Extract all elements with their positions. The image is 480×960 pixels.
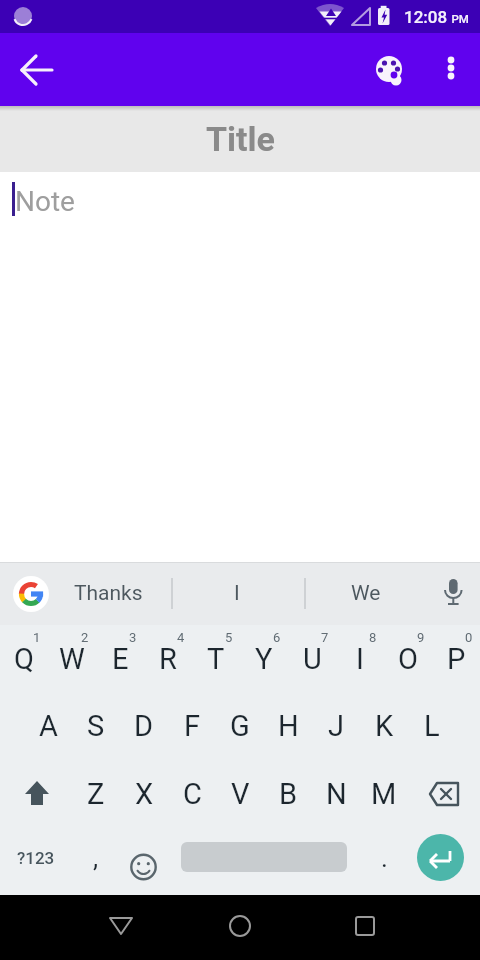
staticText: E xyxy=(112,642,129,676)
staticText: Q xyxy=(14,642,34,676)
button[interactable]: X xyxy=(120,760,168,827)
button[interactable]: . xyxy=(360,827,408,895)
staticText: . xyxy=(381,843,388,873)
button[interactable]: U xyxy=(288,625,336,692)
staticText: X xyxy=(135,777,154,811)
button[interactable]: O xyxy=(384,625,432,692)
staticText: 2 xyxy=(81,630,89,645)
staticText: Thanks xyxy=(74,581,143,606)
staticText: C xyxy=(183,777,202,811)
staticText: Title xyxy=(206,119,275,159)
staticText: I xyxy=(234,581,240,606)
button[interactable] xyxy=(12,575,50,613)
staticText: J xyxy=(328,709,345,743)
button[interactable]: V xyxy=(216,760,264,827)
staticText: ?123 xyxy=(17,848,55,868)
button[interactable] xyxy=(120,827,168,895)
staticText: , xyxy=(93,843,99,873)
staticText: Note xyxy=(15,185,75,218)
button[interactable]: ?123 xyxy=(0,827,72,895)
button[interactable]: R xyxy=(144,625,192,692)
button[interactable]: I xyxy=(177,562,297,625)
staticText: 6 xyxy=(273,630,281,645)
staticText: Z xyxy=(87,777,105,811)
staticText: 4 xyxy=(177,630,185,645)
staticText: U xyxy=(303,642,322,676)
button[interactable]: C xyxy=(168,760,216,827)
staticText: R xyxy=(159,642,177,676)
button[interactable] xyxy=(168,827,360,895)
button[interactable]: G xyxy=(216,692,264,760)
button[interactable] xyxy=(408,760,480,827)
staticText: F xyxy=(184,709,201,743)
button[interactable]: W xyxy=(48,625,96,692)
button[interactable] xyxy=(408,827,480,895)
staticText: 9 xyxy=(417,630,425,645)
staticText: A xyxy=(39,709,58,743)
button[interactable]: L xyxy=(408,692,456,760)
button[interactable]: Y xyxy=(240,625,288,692)
button[interactable]: H xyxy=(264,692,312,760)
button[interactable]: J xyxy=(312,692,360,760)
button[interactable] xyxy=(97,902,145,950)
button[interactable] xyxy=(341,902,389,950)
staticText: 3 xyxy=(129,630,137,645)
staticText: M xyxy=(371,777,397,811)
staticText: 0 xyxy=(465,630,473,645)
button[interactable]: M xyxy=(360,760,408,827)
button[interactable]: Title xyxy=(0,106,480,172)
staticText: W xyxy=(59,642,85,676)
button[interactable] xyxy=(365,46,413,94)
staticText: T xyxy=(207,642,225,676)
button[interactable]: Q xyxy=(0,625,48,692)
button[interactable] xyxy=(13,46,61,94)
button[interactable] xyxy=(216,902,264,950)
staticText: I xyxy=(356,642,364,676)
staticText: 1 xyxy=(33,630,41,645)
staticText: D xyxy=(134,709,154,743)
button[interactable]: E xyxy=(96,625,144,692)
button[interactable]: , xyxy=(72,827,120,895)
staticText: Y xyxy=(255,642,273,676)
button[interactable]: Z xyxy=(72,760,120,827)
button[interactable]: S xyxy=(72,692,120,760)
staticText: N xyxy=(326,777,347,811)
staticText: 5 xyxy=(225,630,233,645)
staticText: S xyxy=(87,709,105,743)
button[interactable]: B xyxy=(264,760,312,827)
staticText: B xyxy=(279,777,298,811)
button[interactable]: P xyxy=(432,625,480,692)
staticText: O xyxy=(398,642,418,676)
staticText: P xyxy=(447,642,466,676)
staticText: K xyxy=(375,709,394,743)
button[interactable]: A xyxy=(24,692,72,760)
button[interactable] xyxy=(0,760,72,827)
staticText: V xyxy=(231,777,250,811)
button[interactable]: D xyxy=(120,692,168,760)
staticText: H xyxy=(278,709,299,743)
staticText: We xyxy=(351,581,381,606)
button[interactable]: T xyxy=(192,625,240,692)
button[interactable]: N xyxy=(312,760,360,827)
staticText: G xyxy=(230,709,250,743)
staticText: 7 xyxy=(321,630,329,645)
button[interactable]: I xyxy=(336,625,384,692)
button[interactable] xyxy=(427,46,475,94)
button[interactable]: Thanks xyxy=(48,562,168,625)
button[interactable]: F xyxy=(168,692,216,760)
staticText: L xyxy=(424,709,440,743)
button[interactable]: We xyxy=(306,562,426,625)
button[interactable]: Note xyxy=(0,172,480,562)
button[interactable]: K xyxy=(360,692,408,760)
staticText: 8 xyxy=(369,630,377,645)
staticText: 12:08 PM xyxy=(404,7,469,27)
